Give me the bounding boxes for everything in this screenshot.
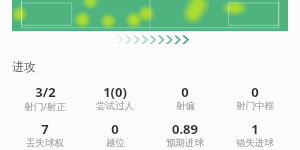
button[interactable] — [12, 0, 288, 31]
staticText: 射门中框 — [236, 100, 274, 112]
staticText: 0 — [181, 83, 189, 101]
staticText: 0 — [251, 83, 259, 101]
staticText: 0 — [111, 120, 119, 138]
staticText: 7 — [41, 120, 49, 138]
button[interactable]: 3/2 — [10, 83, 80, 114]
staticText: 1 — [251, 120, 259, 138]
staticText: 越位 — [106, 137, 125, 149]
button[interactable]: 1 — [220, 120, 290, 150]
staticText: 错失进球 — [236, 137, 274, 149]
button[interactable]: 0 — [80, 120, 150, 150]
button[interactable]: 0.89 — [150, 120, 220, 150]
button[interactable]: 0 — [220, 83, 290, 113]
staticText: 射偏 — [176, 100, 195, 112]
staticText: 尝试过人 — [96, 100, 134, 112]
staticText: 射门/射正 — [24, 100, 66, 113]
staticText: 3/2 — [35, 83, 56, 101]
staticText: 丢失球权 — [26, 137, 64, 149]
button[interactable]: 1(0) — [80, 83, 150, 113]
staticText: 进攻 — [12, 59, 36, 74]
button[interactable]: 7 — [10, 120, 80, 150]
button[interactable]: 0 — [150, 83, 220, 113]
staticText: 1(0) — [103, 83, 127, 101]
staticText: 0.89 — [172, 120, 198, 138]
staticText: 预期进球 — [166, 137, 204, 149]
